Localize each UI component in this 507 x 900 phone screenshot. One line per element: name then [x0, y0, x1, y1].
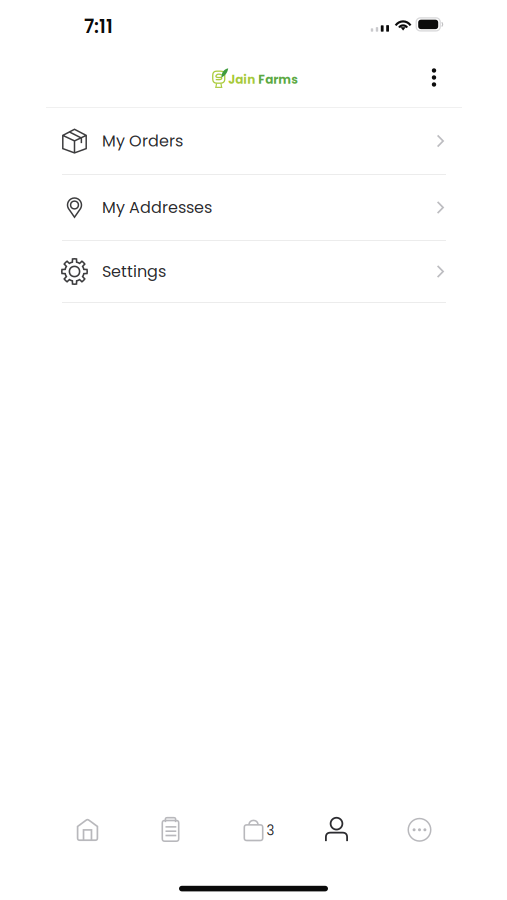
staticText: 3 — [266, 821, 274, 840]
button[interactable]: More — [378, 817, 461, 843]
staticText: Farms — [258, 71, 298, 88]
button[interactable]: More options — [412, 50, 456, 94]
staticText: My Orders — [102, 130, 183, 152]
button[interactable]: My Addresses — [0, 175, 507, 240]
button[interactable]: Home — [46, 817, 129, 843]
staticText: Jain — [228, 71, 255, 88]
button[interactable]: Settings — [0, 241, 507, 302]
staticText: Settings — [102, 260, 166, 283]
button[interactable]: Cart, 3 items — [212, 817, 295, 843]
button[interactable]: Orders — [129, 817, 212, 843]
button[interactable]: My Orders — [0, 108, 507, 174]
button[interactable]: Profile — [295, 817, 378, 843]
staticText: My Addresses — [102, 196, 212, 219]
staticText: 7:11 — [84, 13, 113, 39]
